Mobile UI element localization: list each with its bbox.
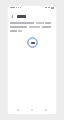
button[interactable]: Loading indicator — [27, 37, 38, 48]
button[interactable]: Back — [10, 14, 15, 19]
button[interactable]: Home — [29, 107, 35, 113]
button[interactable]: Recent apps — [43, 107, 49, 113]
button[interactable]: Back — [15, 107, 21, 113]
